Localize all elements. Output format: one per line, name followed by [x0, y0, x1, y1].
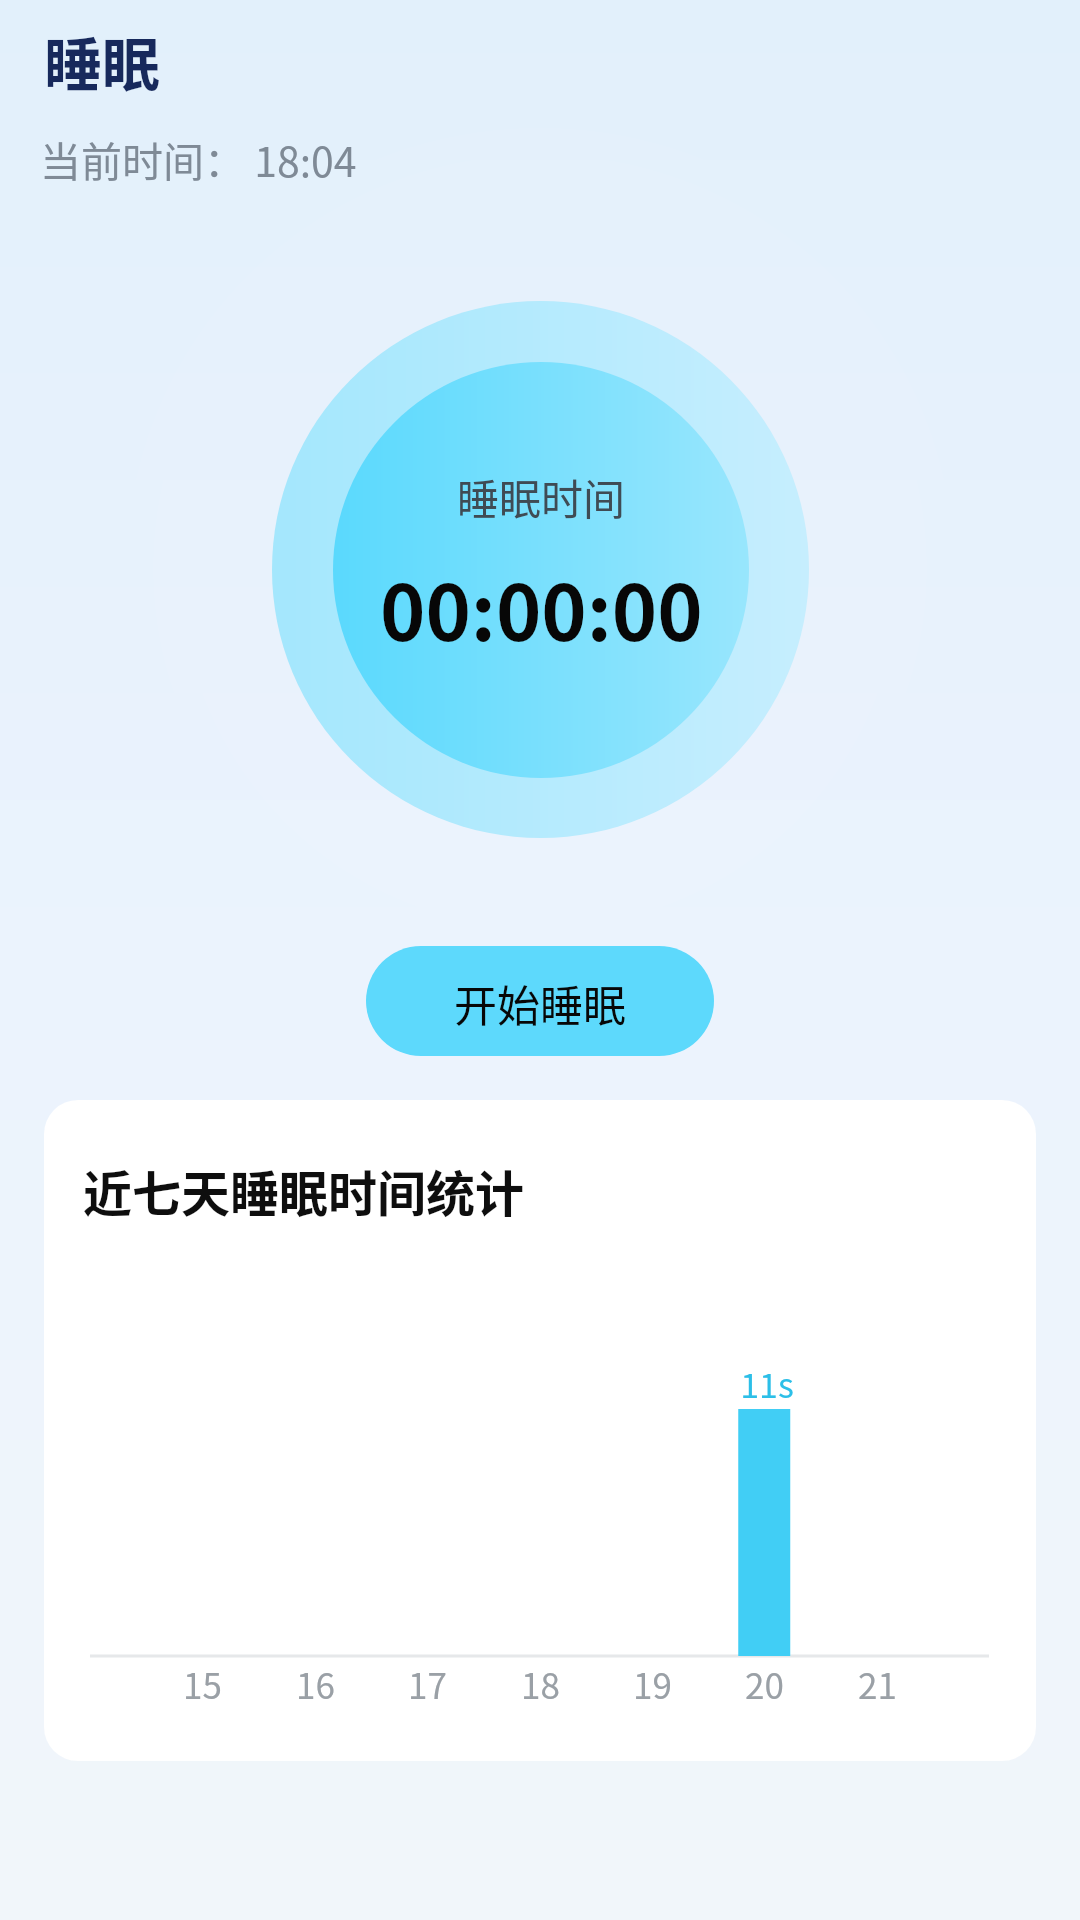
staticText: 睡眠时间: [457, 466, 626, 527]
staticText: 睡眠: [44, 19, 161, 103]
staticText: 16: [296, 1658, 335, 1709]
staticText: 开始睡眠: [454, 972, 626, 1034]
staticText: 当前时间： 18:04: [40, 129, 357, 188]
staticText: 近七天睡眠时间统计: [83, 1155, 525, 1226]
staticText: 15: [183, 1658, 222, 1709]
staticText: 00:00:00: [380, 552, 703, 663]
button[interactable]: 近七天睡眠时间统计: [44, 1100, 1036, 1761]
staticText: 18: [521, 1658, 560, 1709]
staticText: 17: [408, 1658, 447, 1709]
staticText: 21: [858, 1658, 897, 1709]
button[interactable]: 开始睡眠: [366, 946, 714, 1056]
staticText: 20: [745, 1658, 784, 1709]
button[interactable]: 睡眠计时: [272, 301, 809, 838]
staticText: 11s: [740, 1359, 794, 1408]
staticText: 19: [633, 1658, 672, 1709]
